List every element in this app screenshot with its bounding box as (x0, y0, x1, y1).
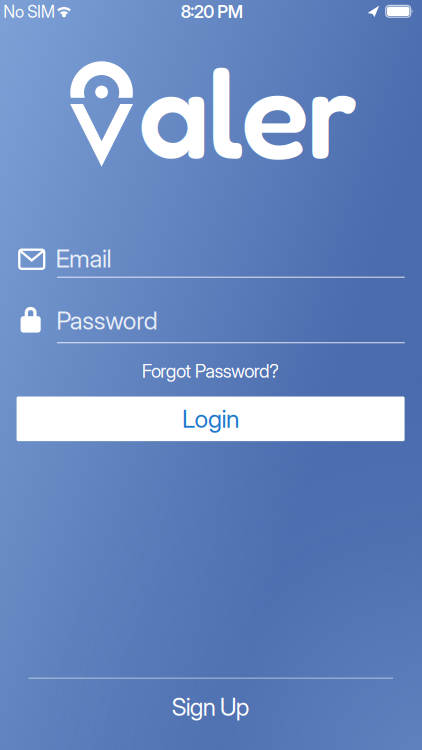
staticText: No SIM (3, 2, 55, 22)
staticText: Password (56, 306, 158, 335)
staticText: Email (55, 244, 111, 273)
button[interactable]: Password (17, 305, 405, 344)
button[interactable]: Sign Up (172, 692, 250, 721)
button[interactable]: Forgot Password? (142, 360, 279, 382)
staticText: aler (138, 34, 359, 188)
staticText: 8:20 PM (181, 1, 243, 22)
button[interactable]: Email (17, 244, 405, 278)
staticText: Sign Up (172, 692, 250, 721)
button[interactable]: Login (17, 396, 405, 441)
staticText: Forgot Password? (142, 360, 279, 382)
staticText: Login (182, 404, 239, 434)
